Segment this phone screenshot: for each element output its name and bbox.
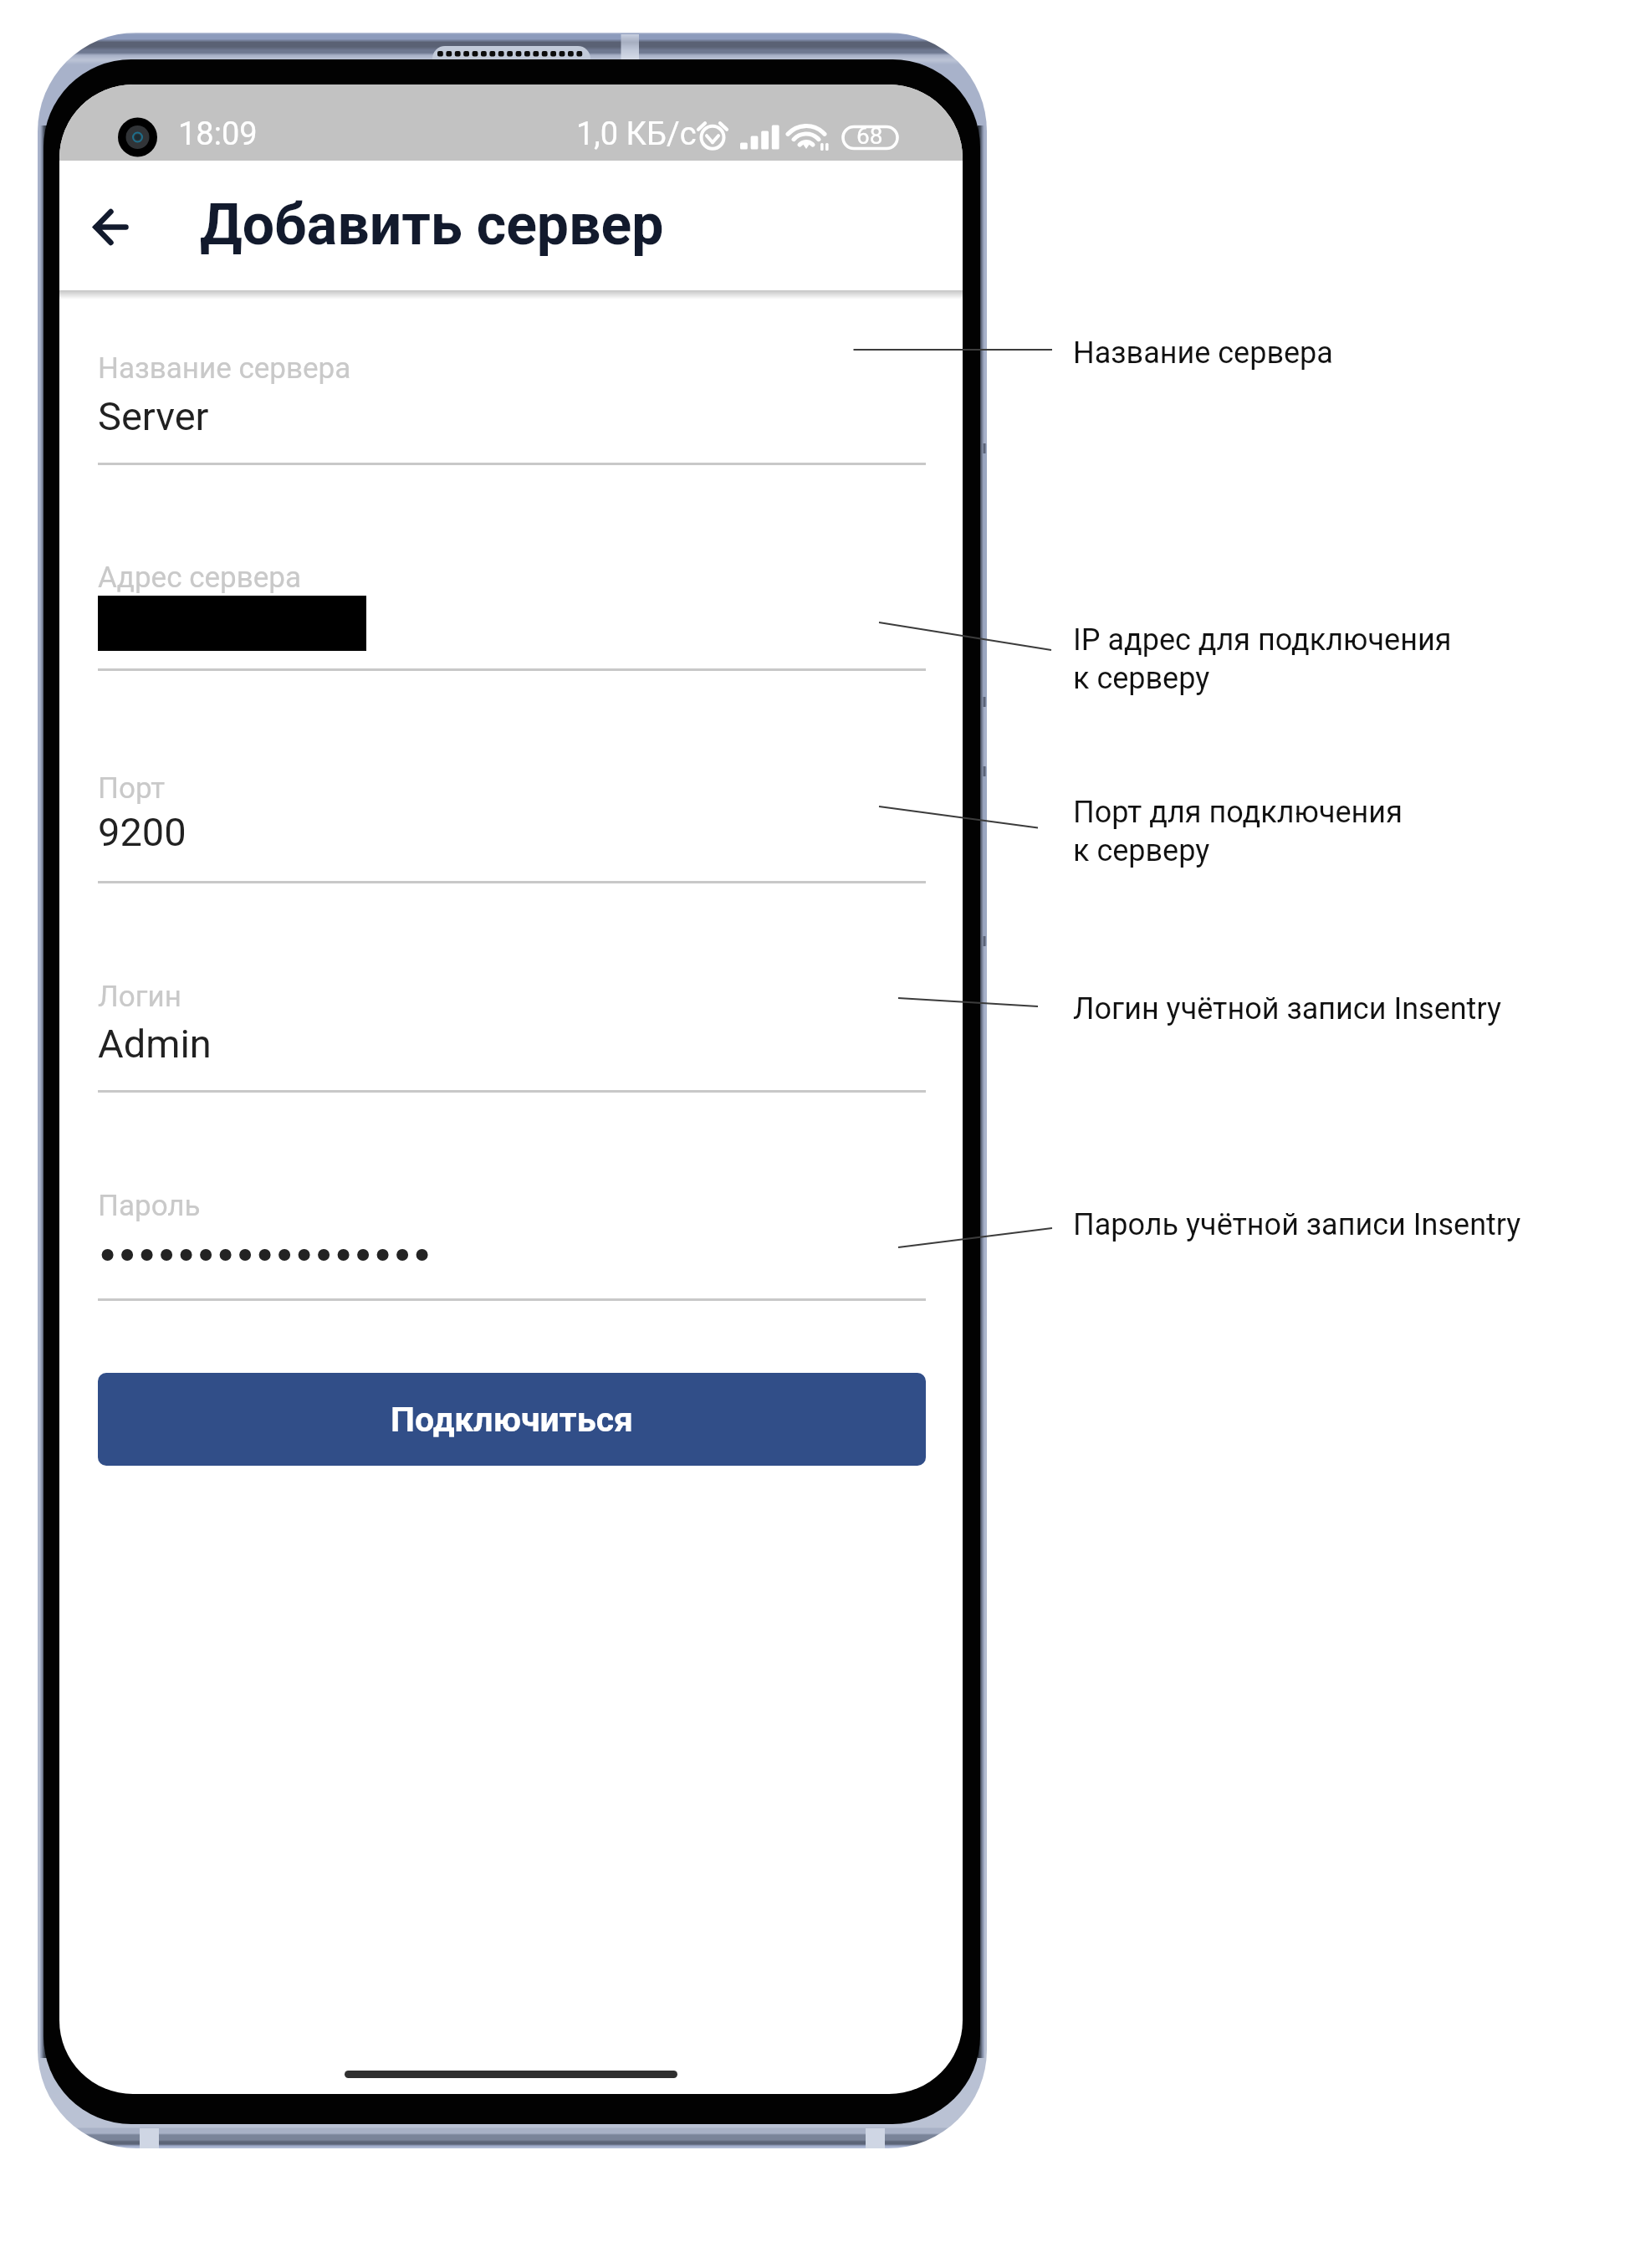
staticText: 9200: [98, 809, 187, 855]
staticText: Подключиться: [391, 1400, 633, 1440]
staticText: Server: [98, 393, 209, 439]
button[interactable]: Название сервера: [98, 346, 926, 466]
button[interactable]: Адрес сервера: [98, 555, 926, 672]
staticText: 68: [856, 122, 883, 150]
staticText: Порт: [98, 771, 166, 806]
staticText: IP адрес для подключения к серверу: [1073, 622, 1452, 696]
staticText: Пароль: [98, 1189, 201, 1223]
staticText: 1,0 КБ/с: [576, 115, 697, 153]
staticText: Порт для подключения к серверу: [1073, 795, 1403, 868]
staticText: Логин учётной записи Insentry: [1073, 991, 1501, 1026]
staticText: Логин: [98, 980, 181, 1014]
staticText: Добавить сервер: [200, 192, 664, 259]
button[interactable]: Логин: [98, 975, 926, 1093]
staticText: Название сервера: [1073, 335, 1333, 371]
staticText: Адрес сервера: [98, 561, 301, 595]
button[interactable]: Порт: [98, 766, 926, 884]
button[interactable]: Пароль: [98, 1184, 926, 1302]
staticText: 18:09: [178, 115, 258, 153]
button[interactable]: Back: [76, 185, 160, 269]
button[interactable]: Подключиться: [98, 1373, 926, 1466]
staticText: Название сервера: [98, 351, 351, 386]
staticText: Admin: [98, 1021, 212, 1067]
staticText: Пароль учётной записи Insentry: [1073, 1207, 1521, 1242]
